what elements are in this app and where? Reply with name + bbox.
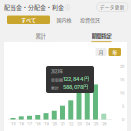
staticText: 月	[98, 48, 103, 56]
staticText: 20	[120, 64, 124, 69]
staticText: '21	[60, 121, 65, 126]
staticText: '22	[68, 121, 73, 126]
staticText: '17	[27, 121, 32, 126]
button[interactable]: 投資信託	[77, 15, 103, 24]
staticText: 国内株	[56, 16, 71, 23]
staticText: 588,078円	[63, 84, 88, 90]
staticText: 配当金・分配金・利金	[4, 3, 64, 11]
button[interactable]: 年	[108, 48, 121, 56]
staticText: '19	[43, 121, 48, 126]
staticText: 10	[120, 91, 124, 95]
staticText: '16	[19, 121, 24, 126]
staticText: 受取額	[51, 77, 63, 83]
staticText: 5	[122, 104, 124, 109]
button[interactable]: 累計	[10, 32, 71, 42]
button[interactable]: すべて	[7, 15, 50, 24]
staticText: 15	[120, 77, 124, 82]
staticText: '23	[76, 121, 81, 126]
staticText: '25	[93, 121, 98, 126]
staticText: '26	[101, 121, 106, 126]
staticText: 累計	[51, 85, 59, 91]
staticText: 0	[122, 117, 124, 122]
button[interactable]: 国内株	[53, 15, 75, 24]
staticText: 年	[112, 48, 117, 56]
staticText: '24	[85, 121, 90, 126]
staticText: 期間指定	[91, 32, 111, 40]
staticText: '20	[52, 121, 57, 126]
staticText: すべて	[21, 16, 36, 23]
staticText: 2023年	[51, 68, 63, 74]
staticText: 122,844円	[63, 76, 89, 82]
button[interactable]: 期間指定	[71, 32, 131, 42]
staticText: '18	[35, 121, 40, 126]
staticText: '15	[10, 121, 15, 126]
staticText: 投資信託	[80, 16, 100, 23]
button[interactable]: データ更新	[97, 2, 128, 12]
staticText: データ更新	[100, 4, 125, 10]
button[interactable]: 月	[95, 48, 106, 56]
staticText: 累計	[35, 32, 45, 40]
staticText: ⓘ	[64, 3, 70, 11]
